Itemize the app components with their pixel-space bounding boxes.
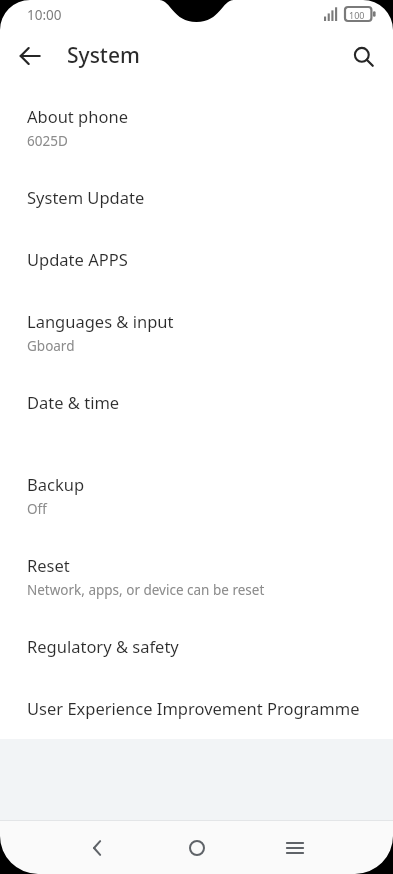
button[interactable]: Home: [175, 826, 219, 870]
staticText: 100: [349, 9, 365, 21]
button[interactable]: Recent apps: [273, 826, 317, 870]
staticText: System: [67, 41, 140, 70]
staticText: Gboard: [27, 337, 75, 355]
staticText: User Experience Improvement Programme: [27, 697, 360, 719]
button[interactable]: Back: [8, 34, 52, 78]
staticText: Update APPS: [27, 248, 128, 270]
staticText: Regulatory & safety: [27, 635, 179, 657]
button[interactable]: Regulatory & safety: [0, 623, 393, 671]
staticText: Reset: [27, 554, 70, 576]
button[interactable]: Backup: [0, 461, 393, 523]
button[interactable]: Reset: [0, 542, 393, 604]
staticText: Languages & input: [27, 310, 174, 332]
button[interactable]: Update APPS: [0, 236, 393, 284]
button[interactable]: Search: [341, 34, 385, 78]
button[interactable]: Date & time: [0, 379, 393, 427]
staticText: About phone: [27, 105, 128, 127]
staticText: 10:00: [27, 6, 62, 24]
button[interactable]: Languages & input: [0, 298, 393, 360]
staticText: System Update: [27, 186, 145, 208]
button[interactable]: About phone: [0, 93, 393, 155]
staticText: Off: [27, 500, 47, 518]
button[interactable]: User Experience Improvement Programme: [0, 685, 393, 733]
button[interactable]: System Update: [0, 174, 393, 222]
staticText: 6025D: [27, 132, 68, 150]
staticText: Backup: [27, 473, 85, 495]
button[interactable]: Back: [76, 826, 120, 870]
staticText: Network, apps, or device can be reset: [27, 581, 265, 599]
staticText: Date & time: [27, 391, 120, 413]
